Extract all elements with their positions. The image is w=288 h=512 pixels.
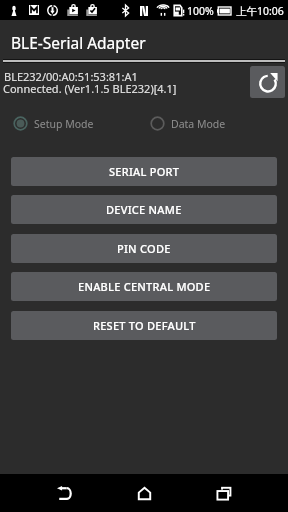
button[interactable]: Recent apps (200, 474, 248, 512)
button[interactable]: Setup Mode (13, 116, 94, 131)
staticText: Setup Mode (34, 117, 94, 131)
staticText: Connected. (Ver1.1.5 BLE232)[4.1] (3, 81, 177, 96)
button[interactable]: Data Mode (150, 116, 226, 131)
staticText: DEVICE NAME (106, 202, 182, 217)
button[interactable]: Home (120, 474, 168, 512)
button[interactable]: PIN CODE (11, 234, 277, 263)
button[interactable]: Back (40, 474, 88, 512)
staticText: PIN CODE (117, 241, 171, 256)
staticText: 100% (187, 4, 214, 18)
button[interactable]: RESET TO DEFAULT (11, 311, 277, 340)
staticText: 上午10:06 (236, 4, 284, 18)
button[interactable]: Refresh (250, 66, 285, 98)
staticText: BLE232/00:A0:51:53:81:A1 (4, 69, 138, 84)
button[interactable]: ENABLE CENTRAL MODE (11, 272, 277, 301)
staticText: ENABLE CENTRAL MODE (78, 279, 211, 294)
staticText: SERIAL PORT (109, 164, 180, 179)
staticText: Data Mode (171, 117, 226, 131)
button[interactable]: DEVICE NAME (11, 195, 277, 224)
button[interactable]: SERIAL PORT (11, 157, 277, 186)
staticText: BLE-Serial Adapter (11, 32, 146, 53)
staticText: RESET TO DEFAULT (93, 318, 196, 333)
